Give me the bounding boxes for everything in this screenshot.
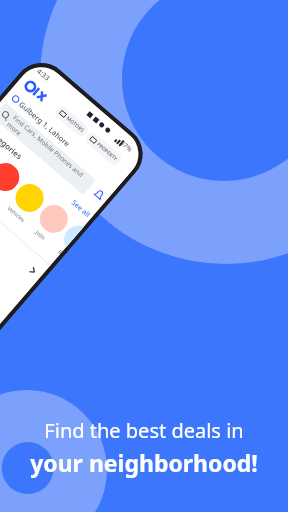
staticText: 57% [118,138,134,154]
staticText: Find the best deals in [44,417,244,444]
staticText: Gulberg 1, Lahore [17,99,73,149]
staticText: MOTORS [65,115,85,134]
button[interactable]: Mobiles [0,157,25,204]
staticText: Jobs [34,228,47,241]
staticText: Find Cars, Mobile Phones and more [5,113,96,195]
button[interactable]: Vehicles [3,178,49,225]
staticText: Vehicles [6,204,27,223]
staticText: 4:33 [34,67,51,83]
button[interactable]: Property [0,136,1,184]
staticText: PROPERTY [95,141,119,162]
staticText: Bikes [57,248,64,255]
button[interactable]: Find Cars, Mobile Phones and more [0,102,96,195]
button[interactable]: PROPERTY [88,135,119,163]
staticText: Mobiles [0,183,2,202]
button[interactable]: Jobs [27,199,73,246]
button[interactable]: Bikes [52,220,84,255]
staticText: Categories [0,126,25,162]
button[interactable]: See all [69,198,92,220]
staticText: your neighborhood! [30,447,258,478]
button[interactable]: Notifications [86,181,111,207]
button[interactable]: MOTORS [58,109,85,134]
